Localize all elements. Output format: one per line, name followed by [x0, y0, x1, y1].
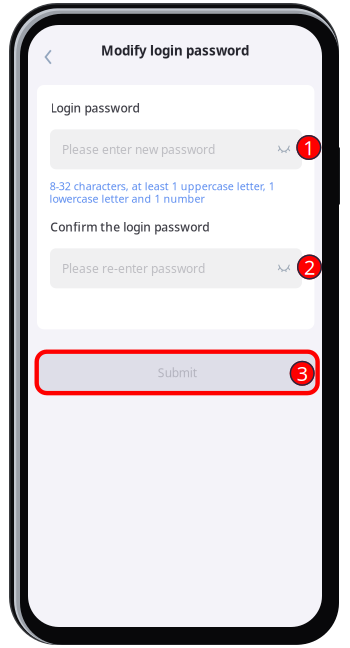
- staticText: 8-32 characters, at least 1 uppercase le…: [50, 179, 275, 193]
- staticText: Please enter new password: [62, 141, 215, 157]
- button[interactable]: Back: [35, 44, 61, 70]
- staticText: 3: [297, 360, 308, 387]
- staticText: Submit: [158, 364, 197, 380]
- staticText: lowercase letter and 1 number: [49, 191, 204, 206]
- button[interactable]: Show password: [273, 138, 295, 160]
- button[interactable]: Show password: [273, 257, 295, 279]
- staticText: Please re-enter password: [62, 260, 205, 276]
- button[interactable]: Submit: [36, 352, 318, 393]
- staticText: Confirm the login password: [50, 219, 209, 235]
- staticText: Login password: [50, 100, 139, 116]
- staticText: 1: [303, 134, 314, 161]
- staticText: 2: [304, 254, 315, 280]
- staticText: Modify login password: [101, 41, 249, 59]
